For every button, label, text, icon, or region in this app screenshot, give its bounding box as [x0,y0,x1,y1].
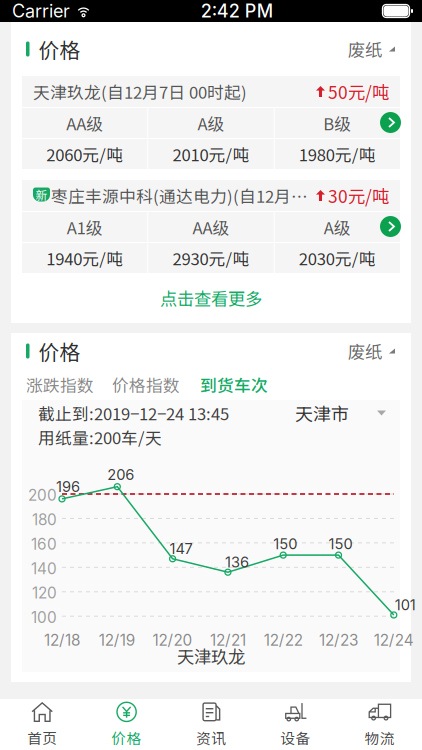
staticText: 180 [32,510,57,529]
staticText: 150 [273,535,297,553]
staticText: 200 [28,486,57,505]
staticText: 到货车次 [200,372,268,396]
staticText: 12/19 [99,631,136,650]
staticText: 点击查看更多 [160,285,262,311]
button[interactable]: 废纸 [348,338,397,364]
button[interactable]: 到货车次 [180,372,268,396]
staticText: B级 [323,111,351,135]
button[interactable]: 查看详情 [380,216,401,237]
staticText: 资讯 [196,727,226,748]
staticText: 用纸量:200车/天 [38,425,162,449]
button[interactable]: 点击查看更多 [11,273,411,323]
button[interactable]: 价格指数 [94,372,180,396]
staticText: 12/20 [153,631,193,650]
button[interactable]: 价格 [84,699,169,750]
button[interactable]: 天津市 [295,400,386,426]
button[interactable]: 设备 [253,699,338,750]
staticText: 天津玖龙(自12月7日 00时起) [33,79,247,103]
staticText: A级 [197,111,224,135]
staticText: 2930元/吨 [172,246,249,270]
staticText: 价格指数 [112,372,180,396]
staticText: 100 [31,608,57,627]
staticText: 160 [31,535,57,553]
staticText: 首页 [27,727,57,748]
staticText: 截止到:2019−12−24 13:45 [38,401,229,425]
staticText: 12/22 [264,631,303,650]
staticText: 101 [395,596,416,614]
staticText: 12/18 [44,631,80,650]
staticText: A1级 [67,215,103,239]
staticText: 天津玖龙 [177,643,245,669]
staticText: 12/23 [319,631,358,650]
staticText: 147 [170,540,193,557]
staticText: 1940元/吨 [46,246,123,270]
staticText: A级 [324,215,351,239]
staticText: 2:42 PM [201,0,273,22]
staticText: 120 [32,584,57,602]
button[interactable]: 资讯 [169,699,253,750]
staticText: 价格 [38,34,80,64]
staticText: AA级 [66,111,103,135]
staticText: 50元/吨 [328,79,389,104]
staticText: 物流 [365,727,395,748]
staticText: 天津市 [295,400,349,426]
staticText: 2030元/吨 [299,246,376,270]
button[interactable]: 物流 [338,699,422,750]
staticText: 新 [35,186,47,203]
staticText: 140 [31,559,57,578]
button[interactable]: 天津玖龙 [22,640,400,672]
staticText: 206 [107,466,134,483]
staticText: 196 [56,478,80,496]
staticText: 30元/吨 [328,183,389,208]
staticText: 136 [225,553,249,571]
staticText: 12/24 [374,631,414,650]
staticText: 涨跌指数 [26,372,94,396]
staticText: 价格 [112,727,142,748]
staticText: Carrier [12,0,70,22]
staticText: 2060元/吨 [46,142,123,166]
staticText: 150 [328,535,352,553]
staticText: 枣庄丰源中科(通达电力)(自12月24日 0… [51,183,312,207]
button[interactable]: 废纸 [348,36,397,62]
staticText: AA级 [192,215,229,239]
staticText: 价格 [38,336,80,366]
button[interactable]: 查看详情 [380,112,401,133]
button[interactable]: 涨跌指数 [26,372,94,396]
staticText: 废纸 [348,36,382,62]
staticText: 1980元/吨 [299,142,376,166]
button[interactable]: 首页 [0,699,84,750]
staticText: 设备 [280,727,310,748]
staticText: 12/21 [210,631,246,650]
staticText: 废纸 [348,338,382,364]
staticText: 2010元/吨 [172,142,249,166]
